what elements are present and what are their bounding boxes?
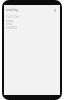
staticText: watchlog: [6, 8, 18, 12]
staticText: 12/08/24: [6, 26, 17, 29]
button[interactable]: empty: [6, 19, 62, 22]
staticText: 1 of 13 fiel: [6, 15, 19, 18]
button[interactable]: watchlog: [6, 8, 18, 12]
button[interactable]: Account: [53, 8, 57, 12]
staticText: resul: [6, 22, 12, 25]
button[interactable]: resul: [6, 22, 62, 25]
button[interactable]: 1 of 13 fiel: [6, 15, 62, 18]
button[interactable]: 12/08/24: [6, 26, 62, 29]
staticText: empty: [6, 19, 14, 22]
